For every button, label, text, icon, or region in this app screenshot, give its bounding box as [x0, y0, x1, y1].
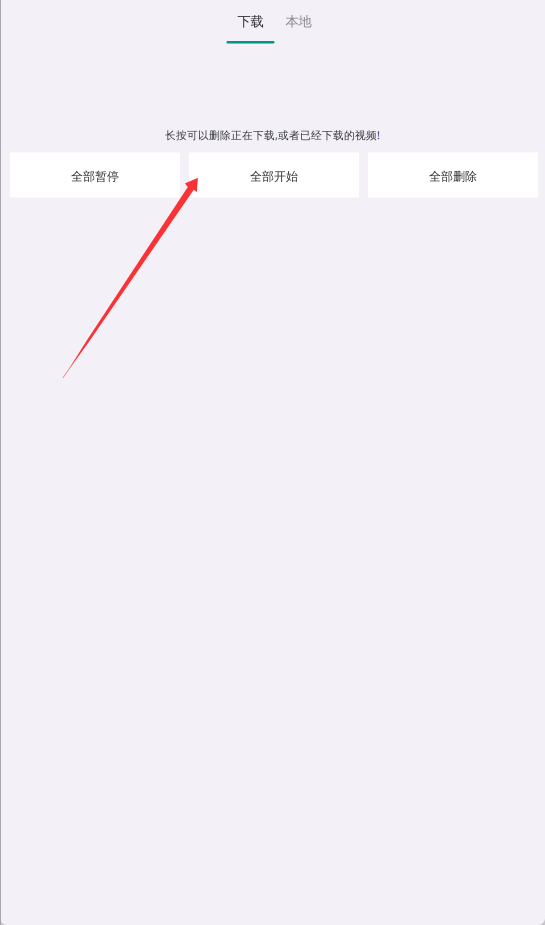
button[interactable]: 下载: [226, 15, 274, 43]
staticText: 本地: [285, 13, 311, 30]
staticText: 长按可以删除正在下载,或者已经下载的视频!: [165, 128, 380, 142]
staticText: 全部删除: [429, 169, 477, 184]
staticText: 全部暂停: [71, 169, 119, 184]
staticText: 全部开始: [250, 169, 298, 184]
button[interactable]: 本地: [274, 15, 322, 43]
staticText: 下载: [237, 13, 263, 30]
button[interactable]: 全部暂停: [10, 152, 180, 197]
button[interactable]: 全部删除: [368, 152, 538, 197]
button[interactable]: 全部开始: [189, 152, 359, 197]
